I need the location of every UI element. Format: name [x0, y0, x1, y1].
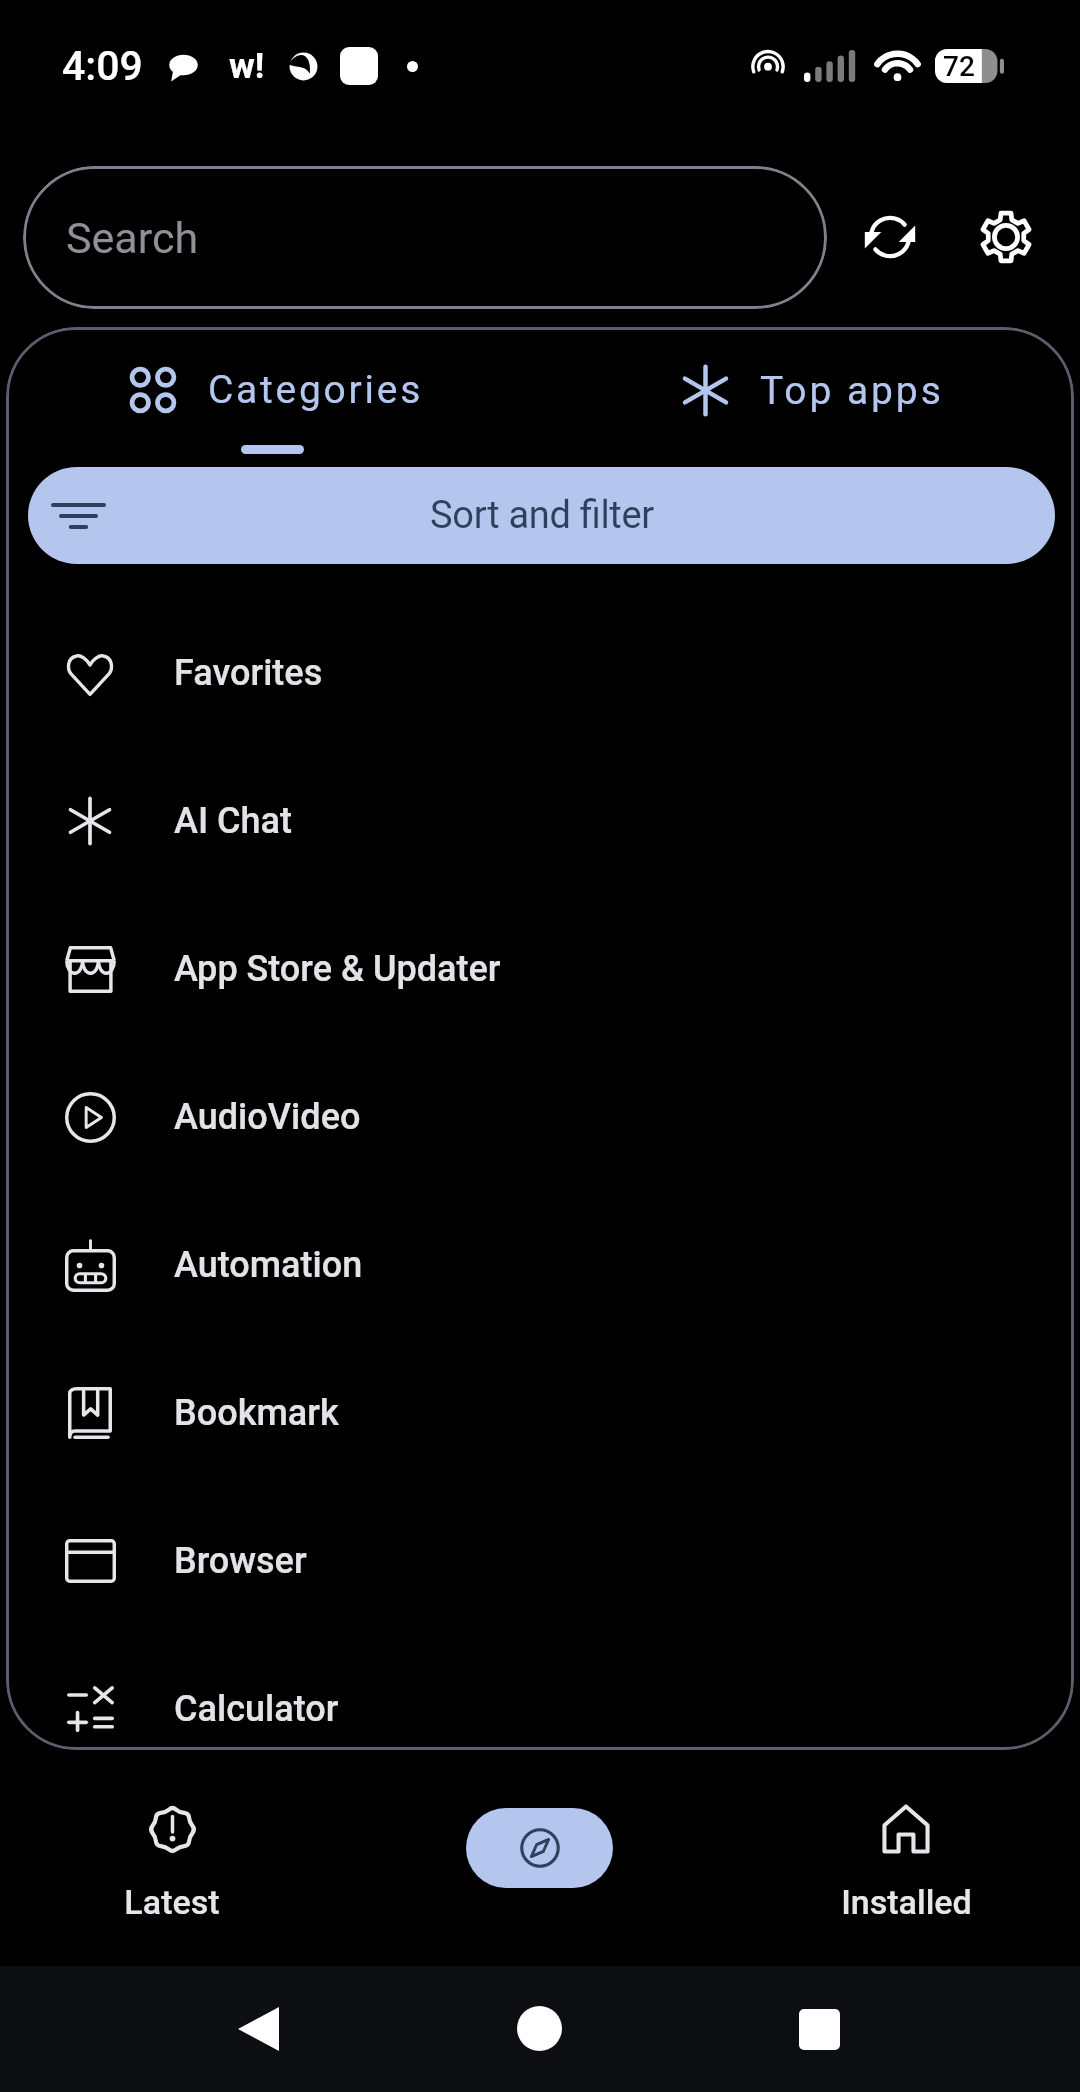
- staticText: Sort and filter: [430, 493, 654, 538]
- button[interactable]: Calculator: [6, 1635, 1074, 1750]
- staticText: Latest: [124, 1882, 220, 1922]
- staticText: Browser: [174, 1540, 307, 1582]
- button[interactable]: Browser: [6, 1487, 1074, 1635]
- staticText: Search: [66, 213, 199, 263]
- staticText: Automation: [174, 1244, 363, 1286]
- button[interactable]: Favorites: [6, 599, 1074, 747]
- button[interactable]: Top apps: [556, 342, 1068, 438]
- button[interactable]: Automation: [6, 1191, 1074, 1339]
- button[interactable]: Settings: [969, 200, 1043, 274]
- staticText: App Store & Updater: [174, 948, 501, 990]
- staticText: AudioVideo: [174, 1096, 361, 1138]
- button[interactable]: Search: [23, 166, 827, 309]
- button[interactable]: Installed: [797, 1780, 1015, 1935]
- staticText: Installed: [841, 1882, 972, 1922]
- button[interactable]: AudioVideo: [6, 1043, 1074, 1191]
- button[interactable]: Sort and filter: [28, 467, 1055, 564]
- button[interactable]: Latest: [63, 1780, 281, 1935]
- button[interactable]: Refresh: [853, 200, 927, 274]
- button[interactable]: Back: [238, 2006, 279, 2052]
- staticText: 4:09: [62, 42, 143, 90]
- staticText: Favorites: [174, 652, 323, 694]
- button[interactable]: Recent apps: [799, 2009, 840, 2050]
- staticText: Top apps: [760, 368, 944, 414]
- button[interactable]: Home: [517, 2006, 562, 2051]
- staticText: 72: [943, 50, 975, 83]
- staticText: Bookmark: [174, 1392, 339, 1434]
- button[interactable]: Categories: [6, 342, 551, 438]
- button[interactable]: Bookmark: [6, 1339, 1074, 1487]
- button[interactable]: Explore: [431, 1780, 649, 1935]
- staticText: Categories: [208, 367, 423, 413]
- staticText: Calculator: [174, 1688, 339, 1730]
- staticText: w!: [229, 46, 265, 87]
- staticText: AI Chat: [174, 800, 293, 842]
- button[interactable]: AI Chat: [6, 747, 1074, 895]
- button[interactable]: App Store & Updater: [6, 895, 1074, 1043]
